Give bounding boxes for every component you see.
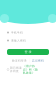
button[interactable]: 登 录: [7, 49, 49, 55]
staticText: 请输入密码: [11, 39, 26, 42]
button[interactable]: 我已阅读并同意: [0, 68, 56, 71]
staticText: 《用户协议》和《隐私政策》: [23, 64, 38, 75]
staticText: 验证码登录: [12, 59, 27, 62]
button[interactable]: 验证码登录: [12, 59, 27, 62]
staticText: 登 录: [24, 50, 31, 54]
staticText: 我已阅读并同意: [10, 66, 22, 73]
staticText: 手机号码: [11, 31, 23, 34]
staticText: 忘记密码: [32, 59, 44, 62]
button[interactable]: 忘记密码: [32, 59, 44, 62]
